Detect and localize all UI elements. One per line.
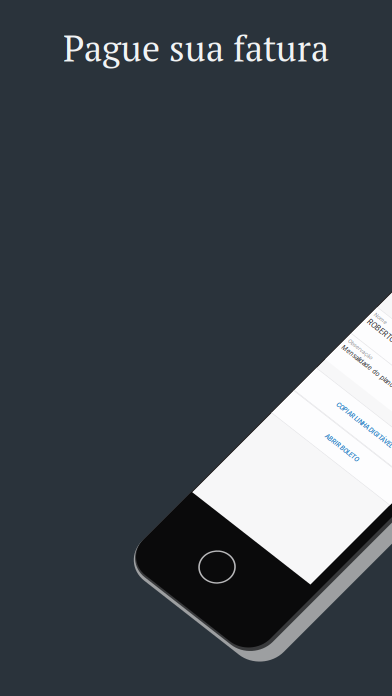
- staticText: Pague sua fatura: [63, 24, 329, 72]
